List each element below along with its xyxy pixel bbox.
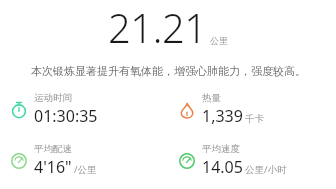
other: Duration	[10, 101, 28, 119]
staticText: 公里/小时	[245, 163, 287, 176]
staticText: 公里	[210, 35, 228, 46]
staticText: 千卡	[245, 113, 264, 125]
other: Calories	[178, 101, 196, 119]
staticText: 14.05	[202, 156, 243, 178]
other: Average speed	[178, 152, 196, 170]
staticText: 运动时间	[34, 92, 72, 104]
staticText: 4'16"	[34, 156, 72, 178]
staticText: 01:30:35	[34, 105, 98, 127]
button[interactable]: Average speed	[168, 143, 336, 178]
button[interactable]: Calories	[168, 92, 336, 127]
staticText: 热量	[202, 92, 221, 104]
staticText: 1,339	[202, 105, 243, 127]
staticText: /公里	[74, 163, 97, 176]
other: Average pace	[10, 152, 28, 170]
button[interactable]: Duration	[0, 92, 168, 127]
button[interactable]: Average pace	[0, 143, 168, 178]
staticText: 平均速度	[202, 143, 240, 155]
staticText: 21.21	[108, 0, 207, 50]
staticText: 本次锻炼显著提升有氧体能，增强心肺能力，强度较高。	[31, 64, 306, 78]
staticText: 平均配速	[34, 143, 72, 155]
